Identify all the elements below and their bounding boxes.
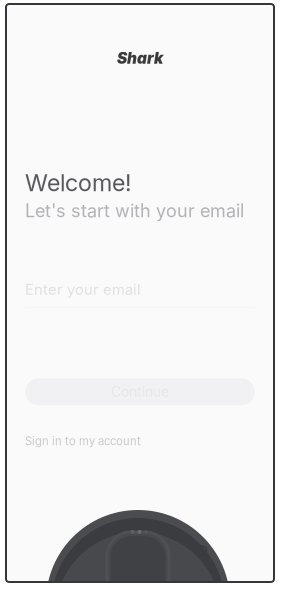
staticText: Welcome!	[25, 169, 131, 197]
staticText: Let's start with your email	[25, 200, 244, 222]
staticText: Shark	[117, 49, 163, 68]
staticText: Enter your email	[25, 281, 141, 298]
staticText: Sign in to my account	[25, 434, 141, 448]
staticText: Continue	[111, 383, 169, 400]
button[interactable]: Sign in to my account	[25, 434, 141, 448]
